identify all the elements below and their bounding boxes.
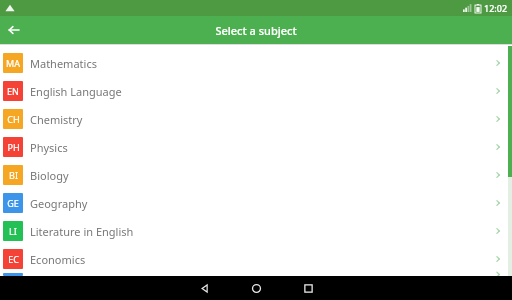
staticText: BI [9,169,18,181]
button[interactable]: MA [0,49,512,77]
button[interactable]: Recent apps [282,276,334,300]
staticText: English Language [30,84,494,99]
staticText: EN [7,85,19,97]
staticText: 12:02 [484,2,508,14]
staticText: Select a subject [215,23,297,38]
button[interactable]: Back [178,276,230,300]
button[interactable]: Home [230,276,282,300]
button[interactable]: CH [0,105,512,133]
button[interactable]: EC [0,245,512,273]
button[interactable]: GE [0,189,512,217]
staticText: GE [7,197,19,209]
staticText: Biology [30,168,494,183]
staticText: EC [8,253,19,265]
staticText: Mathematics [30,56,494,71]
button[interactable]: LI [0,217,512,245]
staticText: CH [7,113,20,125]
staticText: MA [6,57,20,69]
staticText: Economics [30,252,494,267]
staticText: Physics [30,140,494,155]
button[interactable]: BI [0,161,512,189]
staticText: Literature in English [30,224,494,239]
button[interactable]: PH [0,133,512,161]
button[interactable]: EN [0,77,512,105]
staticText: Geography [30,196,494,211]
staticText: LI [9,225,17,237]
staticText: Chemistry [30,112,494,127]
button[interactable]: Back [0,16,28,44]
button[interactable]: CI [0,273,512,276]
staticText: PH [7,141,20,153]
